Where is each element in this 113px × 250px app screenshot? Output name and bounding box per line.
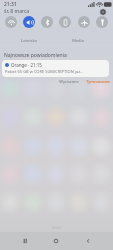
staticText: 21:31	[4, 1, 17, 8]
button[interactable]: Orange · 21:15	[2, 60, 109, 77]
staticText: Tymczasowe	[86, 79, 110, 84]
staticText: Lotnisko	[21, 38, 37, 43]
button[interactable]: Flashlight	[96, 16, 108, 28]
staticText: śr, 8 marca	[4, 8, 30, 15]
button[interactable]: Tymczasowe	[85, 78, 111, 84]
button[interactable]: Bluetooth	[41, 16, 53, 28]
staticText: Media	[72, 38, 84, 43]
button[interactable]: Lotnisko	[14, 37, 44, 43]
button[interactable]: Back	[79, 232, 97, 250]
staticText: Orange · 21:15	[11, 62, 42, 68]
button[interactable]: Home	[47, 232, 65, 250]
staticText: Najnowsze powiadomienia	[4, 52, 67, 59]
button[interactable]: Wi-Fi	[5, 16, 17, 28]
button[interactable]: Wyciszone	[55, 78, 83, 84]
button[interactable]: Recents	[16, 232, 34, 250]
staticText: Pakiet 65 GB w CORE SUBSCRIPTION już...	[5, 69, 84, 74]
button[interactable]: Auto rotate	[59, 16, 71, 28]
button[interactable]: Sound	[23, 16, 35, 28]
button[interactable]: Settings	[99, 8, 107, 16]
button[interactable]: Media	[63, 37, 93, 43]
staticText: Wyciszone	[59, 79, 79, 84]
staticText: Start	[52, 225, 61, 230]
button[interactable]: Airplane mode	[78, 16, 90, 28]
